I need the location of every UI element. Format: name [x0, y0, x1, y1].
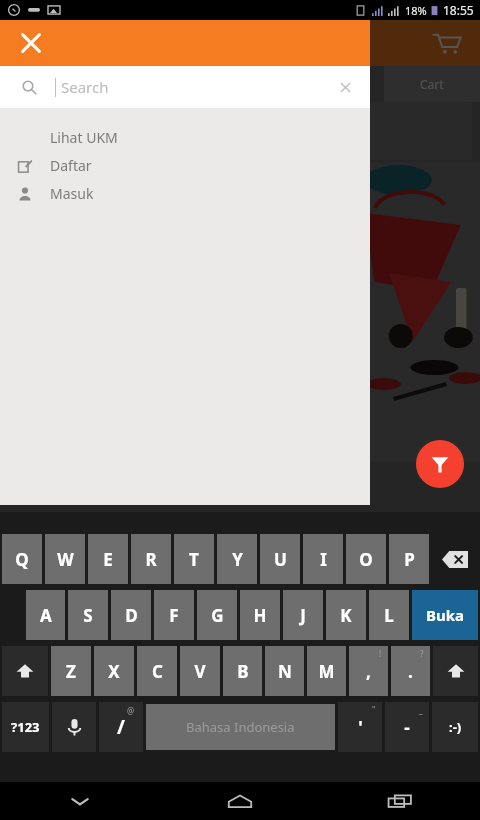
staticText: E — [103, 548, 113, 571]
button[interactable]: O — [346, 534, 386, 584]
button[interactable]: L — [369, 590, 409, 640]
button[interactable]: U — [260, 534, 300, 584]
staticText: Masuk — [50, 184, 94, 203]
button[interactable]: P — [389, 534, 429, 584]
staticText: C — [152, 660, 163, 683]
staticText: A — [40, 604, 52, 627]
button[interactable]: R — [131, 534, 171, 584]
staticText: S — [83, 604, 93, 627]
staticText: Search — [61, 77, 109, 97]
button[interactable]: H — [240, 590, 280, 640]
staticText: , — [366, 660, 371, 683]
button[interactable]: Search — [0, 66, 370, 108]
staticText: / — [117, 714, 125, 740]
staticText: " — [372, 704, 376, 715]
staticText: U — [274, 548, 287, 571]
button[interactable]: . — [391, 646, 430, 696]
staticText: Daftar — [50, 156, 92, 175]
staticText: W — [57, 548, 74, 571]
button[interactable]: Hide keyboard — [0, 782, 160, 820]
staticText: ' — [358, 716, 363, 739]
staticText: O — [359, 548, 373, 571]
button[interactable]: K — [326, 590, 366, 640]
button[interactable]: B — [223, 646, 262, 696]
button[interactable]: Clear search — [337, 79, 354, 96]
button[interactable]: Voice input — [52, 702, 96, 752]
button[interactable]: Cart — [430, 26, 464, 60]
staticText: N — [278, 660, 292, 683]
button[interactable]: Z — [51, 646, 91, 696]
button[interactable]: Close — [16, 28, 46, 58]
button[interactable]: , — [349, 646, 388, 696]
button[interactable]: Backspace — [432, 534, 478, 584]
button[interactable]: / — [99, 702, 143, 752]
button[interactable]: X — [94, 646, 134, 696]
staticText: 18:55 — [443, 2, 474, 18]
staticText: K — [340, 604, 352, 627]
staticText: Z — [66, 660, 76, 683]
staticText: Cart — [420, 76, 444, 92]
staticText: Q — [15, 548, 29, 571]
button[interactable]: Recents — [320, 782, 480, 820]
staticText: V — [194, 660, 206, 683]
button[interactable]: S — [68, 590, 108, 640]
staticText: . — [408, 660, 413, 683]
staticText: :-) — [449, 718, 462, 736]
staticText: D — [125, 604, 138, 627]
button[interactable]: I — [303, 534, 343, 584]
button[interactable]: Y — [217, 534, 257, 584]
button[interactable]: Shift — [2, 646, 48, 696]
button[interactable]: Lihat UKM — [0, 124, 370, 151]
staticText: J — [300, 604, 306, 627]
button[interactable]: Buka — [412, 590, 478, 640]
staticText: - — [404, 716, 410, 739]
button[interactable]: Masuk — [0, 180, 370, 207]
button[interactable]: M — [307, 646, 346, 696]
staticText: @ — [127, 705, 135, 716]
staticText: L — [384, 604, 394, 627]
button[interactable]: Bahasa Indonesia — [146, 704, 335, 750]
button[interactable]: :-) — [432, 702, 478, 752]
staticText: 18% — [405, 3, 427, 18]
button[interactable]: E — [88, 534, 128, 584]
button[interactable]: Filter — [416, 440, 464, 488]
staticText: _ — [419, 704, 423, 715]
button[interactable]: ?123 — [2, 702, 49, 752]
button[interactable]: Q — [2, 534, 42, 584]
staticText: T — [189, 548, 199, 571]
staticText: R — [145, 548, 157, 571]
button[interactable]: V — [180, 646, 220, 696]
staticText: ! — [379, 648, 382, 659]
staticText: B — [237, 660, 249, 683]
staticText: ?123 — [11, 718, 40, 736]
button[interactable]: D — [111, 590, 151, 640]
staticText: X — [108, 660, 120, 683]
button[interactable]: J — [283, 590, 323, 640]
button[interactable]: W — [45, 534, 85, 584]
staticText: P — [404, 548, 415, 571]
staticText: G — [211, 604, 224, 627]
button[interactable]: Home — [160, 782, 320, 820]
button[interactable]: T — [174, 534, 214, 584]
button[interactable]: A — [26, 590, 65, 640]
button[interactable]: F — [154, 590, 194, 640]
staticText: M — [318, 660, 335, 683]
button[interactable]: G — [197, 590, 237, 640]
button[interactable]: N — [265, 646, 304, 696]
button[interactable]: Daftar — [0, 152, 370, 179]
button[interactable]: C — [137, 646, 177, 696]
staticText: F — [169, 604, 179, 627]
staticText: Bahasa Indonesia — [186, 718, 295, 736]
button[interactable]: - — [385, 702, 429, 752]
button[interactable]: Shift — [433, 646, 478, 696]
staticText: I — [320, 548, 327, 571]
button[interactable]: ' — [338, 702, 382, 752]
staticText: Buka — [426, 605, 465, 625]
staticText: H — [253, 604, 267, 627]
staticText: Y — [232, 548, 243, 571]
staticText: ? — [420, 648, 424, 659]
staticText: Lihat UKM — [50, 128, 118, 147]
